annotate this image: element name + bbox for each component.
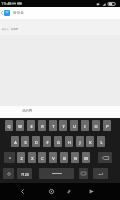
button[interactable]: B (60, 152, 68, 163)
staticText: O (94, 124, 98, 129)
button[interactable]: G (54, 136, 62, 147)
staticText: T (52, 124, 55, 129)
button[interactable]: Shift (4, 152, 15, 163)
button[interactable]: U (70, 120, 78, 131)
button[interactable]: Backspace (98, 152, 112, 163)
staticText: W (18, 124, 22, 129)
staticText: U (73, 124, 76, 129)
button[interactable]: Language (79, 168, 88, 179)
button[interactable]: Voice input (63, 183, 75, 200)
button[interactable]: J (76, 136, 84, 147)
button[interactable]: A (11, 136, 19, 147)
staticText: E (30, 124, 33, 129)
staticText: 收件人: (2, 28, 9, 31)
button[interactable]: I (81, 120, 89, 131)
button[interactable]: T (49, 120, 57, 131)
button[interactable]: H (65, 136, 73, 147)
staticText: M (84, 156, 88, 161)
button[interactable]: K (86, 136, 94, 147)
staticText: L (100, 140, 103, 145)
button[interactable]: Home (45, 183, 57, 200)
staticText: C (41, 156, 44, 161)
staticText: B (63, 156, 66, 161)
staticText: P (106, 124, 109, 129)
button[interactable]: Enter (93, 168, 108, 179)
staticText: H (68, 140, 71, 145)
button[interactable]: C (38, 152, 46, 163)
staticText: ?123 (21, 172, 29, 177)
staticText: R (41, 124, 44, 129)
button[interactable]: Back (16, 183, 28, 200)
staticText: G (57, 140, 60, 145)
staticText: I (84, 124, 86, 129)
button[interactable]: Space (39, 168, 74, 179)
button[interactable]: L (97, 136, 105, 147)
button[interactable]: Back (0, 7, 4, 19)
button[interactable]: N (71, 152, 79, 163)
staticText: 19:45 (1, 1, 12, 7)
staticText: 机器网 (11, 28, 18, 31)
button[interactable]: ?123 (17, 168, 32, 179)
button[interactable]: Q (5, 120, 13, 131)
staticText: A (14, 140, 17, 145)
staticText: F (46, 140, 49, 145)
button[interactable]: Y (59, 120, 67, 131)
staticText: Z (20, 156, 23, 161)
staticText: 新信息 (13, 11, 24, 16)
button[interactable]: W (16, 120, 24, 131)
button[interactable]: Emoji (3, 168, 14, 179)
staticText: V (52, 156, 55, 161)
button[interactable]: M (82, 152, 90, 163)
button[interactable]: X (28, 152, 36, 163)
button[interactable]: E (27, 120, 35, 131)
button[interactable]: P (103, 120, 111, 131)
staticText: D (35, 140, 38, 145)
button[interactable]: F (43, 136, 51, 147)
staticText: S (24, 140, 27, 145)
button[interactable]: D (32, 136, 40, 147)
button[interactable]: R (38, 120, 46, 131)
staticText: J (79, 140, 81, 145)
staticText: Y (62, 124, 65, 129)
staticText: K (89, 140, 92, 145)
button[interactable]: O (92, 120, 100, 131)
button[interactable]: Z (17, 152, 25, 163)
button[interactable]: S (21, 136, 29, 147)
staticText: N (74, 156, 77, 161)
button[interactable]: V (49, 152, 57, 163)
button[interactable]: 我的网 (22, 109, 33, 113)
button[interactable]: Send (85, 183, 97, 200)
button[interactable]: 收件人: (0, 19, 120, 35)
staticText: X (31, 156, 34, 161)
staticText: Q (7, 124, 11, 129)
